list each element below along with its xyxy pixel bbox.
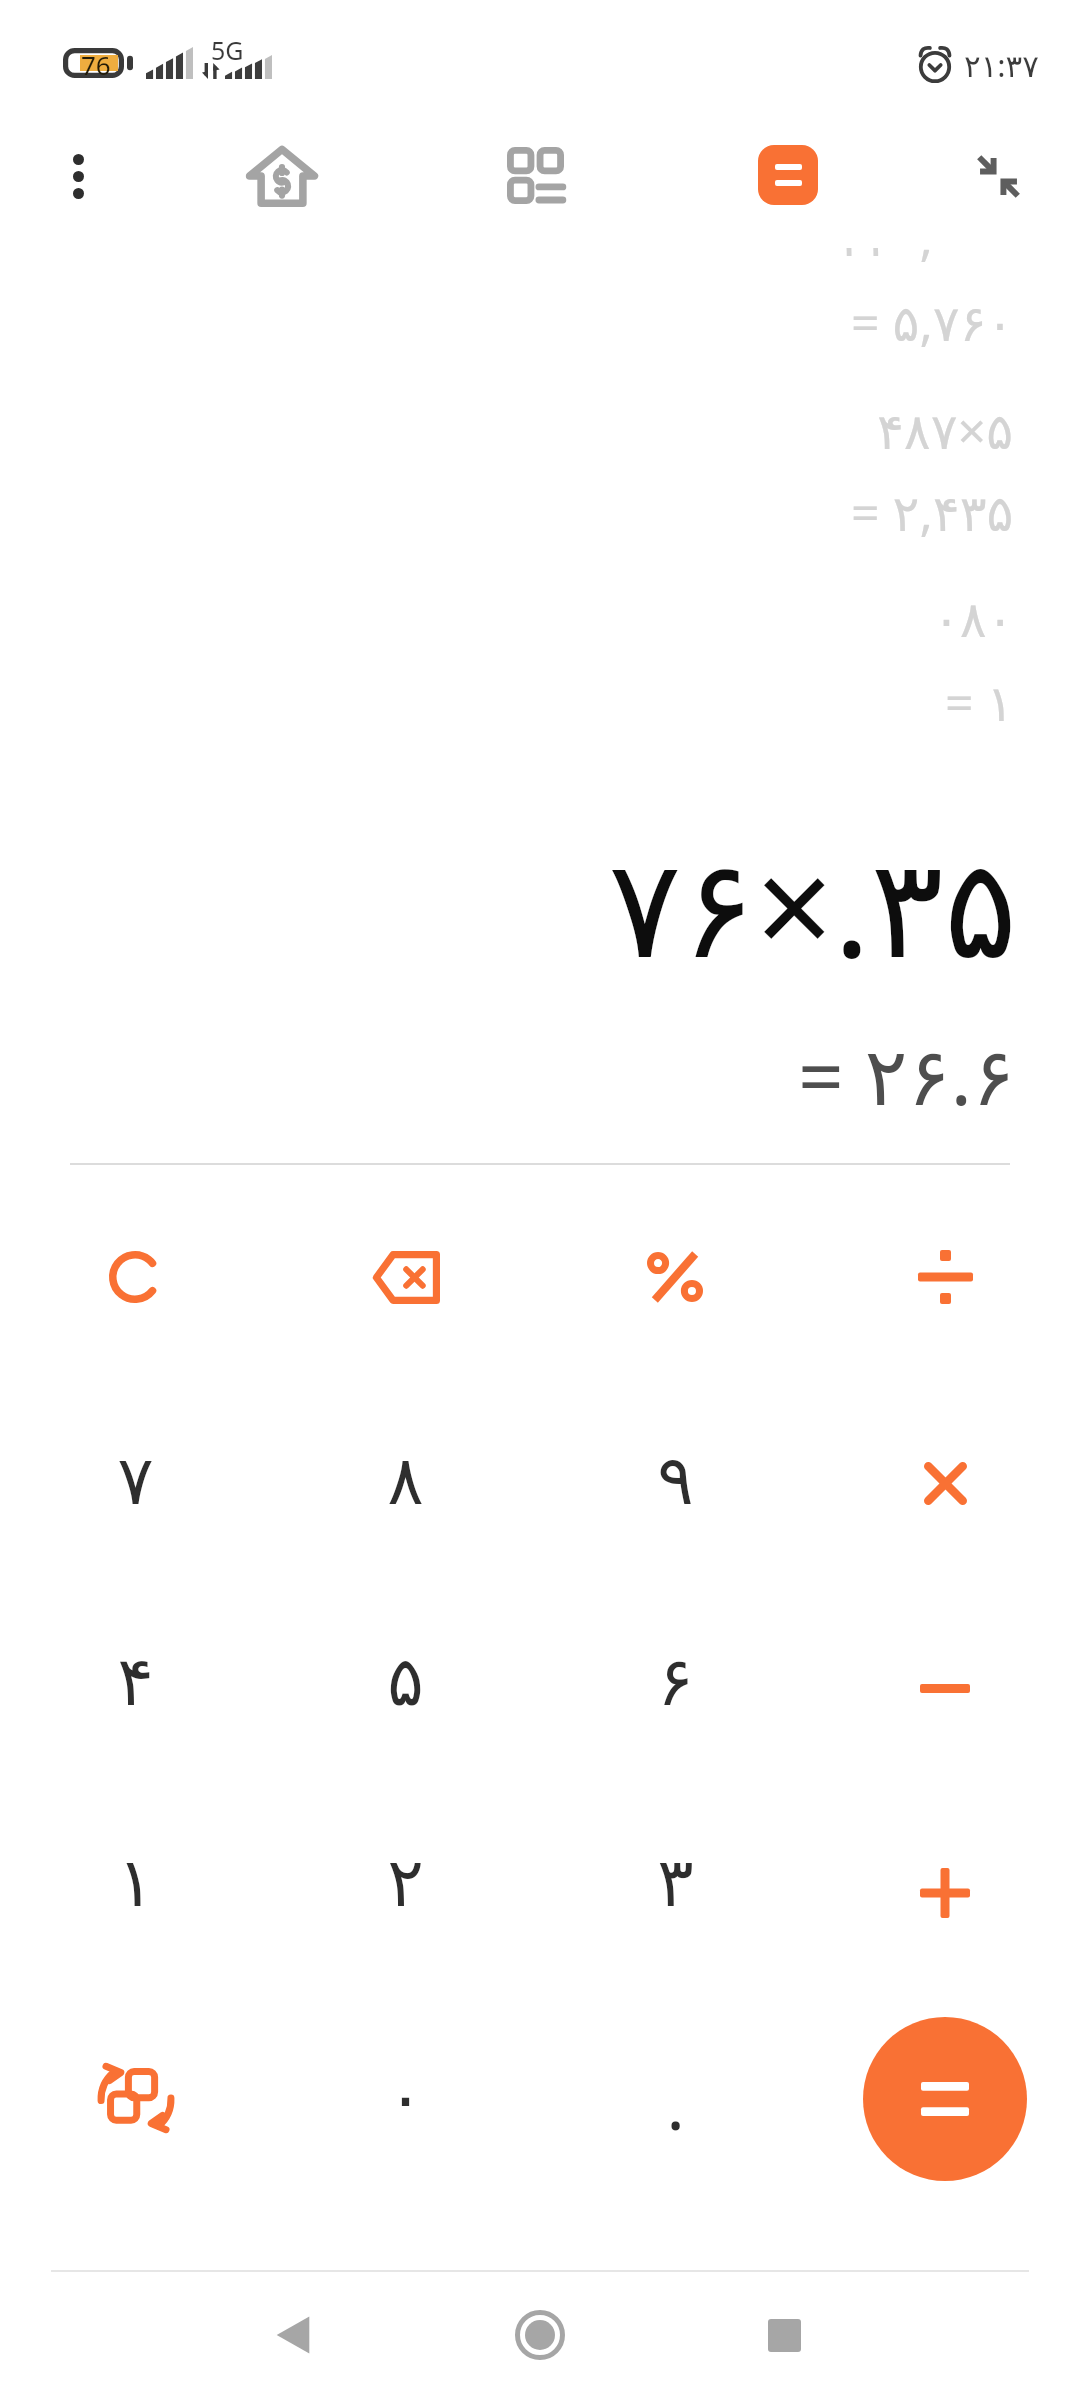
- staticText: ۲: [387, 1843, 424, 1922]
- staticText: ۷: [117, 1441, 154, 1520]
- button[interactable]: Mortgage: [222, 116, 342, 236]
- staticText: ۴۸۷×۵: [877, 396, 1014, 464]
- button[interactable]: Two: [270, 1782, 540, 1982]
- button[interactable]: Divide: [810, 1177, 1080, 1377]
- staticText: ۴: [117, 1642, 154, 1721]
- button[interactable]: Three: [540, 1782, 810, 1982]
- button[interactable]: Plus: [810, 1782, 1080, 1982]
- staticText: ۳: [657, 1843, 694, 1922]
- button[interactable]: Converter: [475, 115, 595, 235]
- button[interactable]: Collapse: [943, 116, 1053, 236]
- button[interactable]: Calculator: [728, 115, 848, 235]
- button[interactable]: Clear: [0, 1177, 270, 1377]
- button[interactable]: Backspace: [270, 1177, 540, 1377]
- button[interactable]: Seven: [0, 1380, 270, 1580]
- button[interactable]: Nine: [540, 1380, 810, 1580]
- staticText: = ۵,۷۶۰: [851, 288, 1014, 356]
- staticText: = ۲,۴۳۵: [851, 478, 1014, 546]
- staticText: ۸: [387, 1441, 424, 1520]
- button[interactable]: Five: [270, 1581, 540, 1781]
- staticText: ۹: [657, 1441, 694, 1520]
- button[interactable]: Decimal point: [540, 1984, 810, 2184]
- staticText: 76: [81, 47, 111, 77]
- staticText: ۷۶×.۳۵: [608, 811, 1018, 971]
- button[interactable]: Convert: [0, 1984, 270, 2184]
- button[interactable]: Recents: [704, 2275, 864, 2395]
- staticText: ۵: [387, 1642, 424, 1721]
- button[interactable]: Equals: [810, 1984, 1080, 2184]
- button[interactable]: Back: [213, 2275, 373, 2395]
- staticText: ۰: [387, 2058, 424, 2137]
- staticText: ۶: [657, 1642, 694, 1721]
- button[interactable]: One: [0, 1782, 270, 1982]
- staticText: = ۱: [945, 668, 1014, 736]
- staticText: ۲۴۰,۰۰۰: [839, 248, 1014, 271]
- button[interactable]: Percent: [540, 1177, 810, 1377]
- staticText: 5G: [211, 33, 244, 67]
- staticText: .: [666, 2057, 685, 2150]
- button[interactable]: Eight: [270, 1380, 540, 1580]
- button[interactable]: More options: [33, 116, 123, 236]
- staticText: ۰۸۰: [933, 591, 1014, 649]
- staticText: ۱: [117, 1843, 154, 1922]
- button[interactable]: Four: [0, 1581, 270, 1781]
- button[interactable]: Zero: [270, 1984, 540, 2184]
- button[interactable]: Home: [460, 2275, 620, 2395]
- button[interactable]: Minus: [810, 1581, 1080, 1781]
- staticText: = ۲۶.۶: [798, 1019, 1015, 1128]
- staticText: ۲۱:۳۷: [964, 44, 1039, 86]
- button[interactable]: Six: [540, 1581, 810, 1781]
- button[interactable]: Multiply: [810, 1380, 1080, 1580]
